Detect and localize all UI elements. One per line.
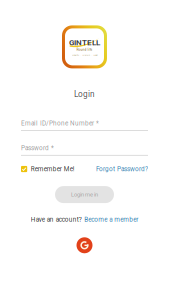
staticText: Forgot Password? [96,165,148,173]
staticText: Password * [21,144,54,152]
button[interactable]: Login me in [55,186,114,203]
button[interactable]: Forgot Password? [96,165,148,173]
staticText: Remember Me! [31,165,75,173]
staticText: Become a member [84,216,138,223]
staticText: HEALTH · LIVING · LUXE [71,53,97,56]
button[interactable]: Become a member [84,216,138,223]
staticText: Email ID/Phone Number * [21,119,99,127]
button[interactable]: Remember Me! [21,165,75,173]
staticText: Have an account? [31,216,82,223]
button[interactable]: Sign in with Google [76,237,92,253]
staticText: Round life [76,48,92,52]
staticText: GINTELL [69,38,100,47]
staticText: Login me in [71,191,98,198]
staticText: Login [74,89,95,99]
